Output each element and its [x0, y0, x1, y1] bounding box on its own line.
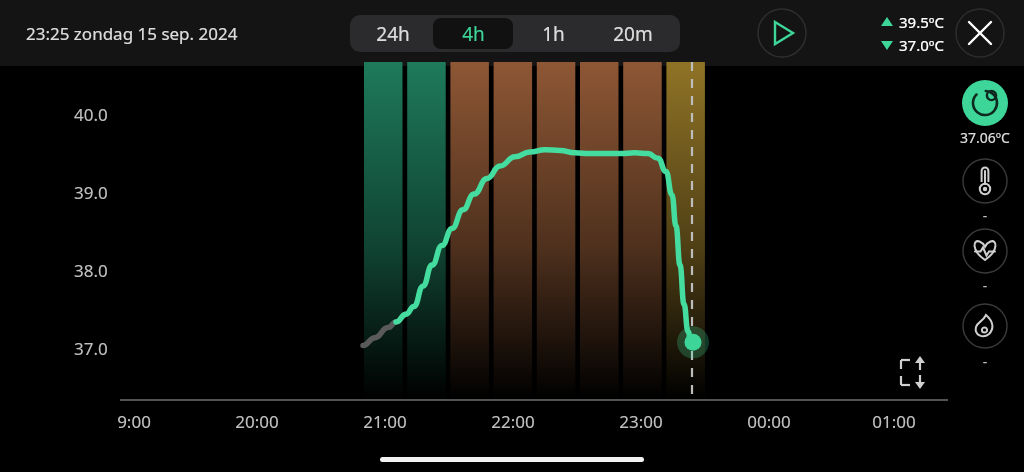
button[interactable]: Core temperature	[962, 80, 1008, 126]
staticText: 20:00	[227, 410, 287, 433]
button[interactable]: Skin temperature	[962, 158, 1008, 204]
staticText: 39.5ºC	[899, 12, 944, 32]
staticText: 37.06ºC	[950, 128, 1020, 147]
staticText: 00:00	[739, 410, 799, 433]
button[interactable]: 1h	[513, 18, 593, 49]
staticText: 24h	[376, 21, 410, 47]
button[interactable]: Activity	[962, 303, 1008, 349]
staticText: 22:00	[483, 410, 543, 433]
staticText: 9:00	[104, 410, 164, 433]
staticText: -	[950, 352, 1020, 371]
button[interactable]: 20m	[593, 18, 673, 49]
staticText: 21:00	[355, 410, 415, 433]
staticText: 01:00	[864, 410, 924, 433]
staticText: 39.0	[74, 181, 108, 204]
button[interactable]: 4h	[433, 18, 513, 49]
staticText: 37.0ºC	[899, 35, 944, 55]
staticText: 20m	[613, 21, 653, 47]
staticText: 1h	[542, 21, 565, 47]
staticText: 23:00	[611, 410, 671, 433]
staticText: -	[950, 276, 1020, 295]
button[interactable]: Expand chart	[893, 355, 933, 395]
button[interactable]: Heart rate	[962, 228, 1008, 274]
button[interactable]: Close	[955, 8, 1005, 58]
staticText: -	[950, 206, 1020, 225]
staticText: 4h	[462, 21, 485, 47]
staticText: 23:25 zondag 15 sep. 2024	[26, 22, 238, 45]
staticText: 37.0	[74, 337, 108, 360]
button[interactable]: Play	[757, 8, 807, 58]
button[interactable]: 24h	[353, 18, 433, 49]
staticText: 38.0	[74, 259, 108, 282]
staticText: 40.0	[74, 103, 108, 126]
